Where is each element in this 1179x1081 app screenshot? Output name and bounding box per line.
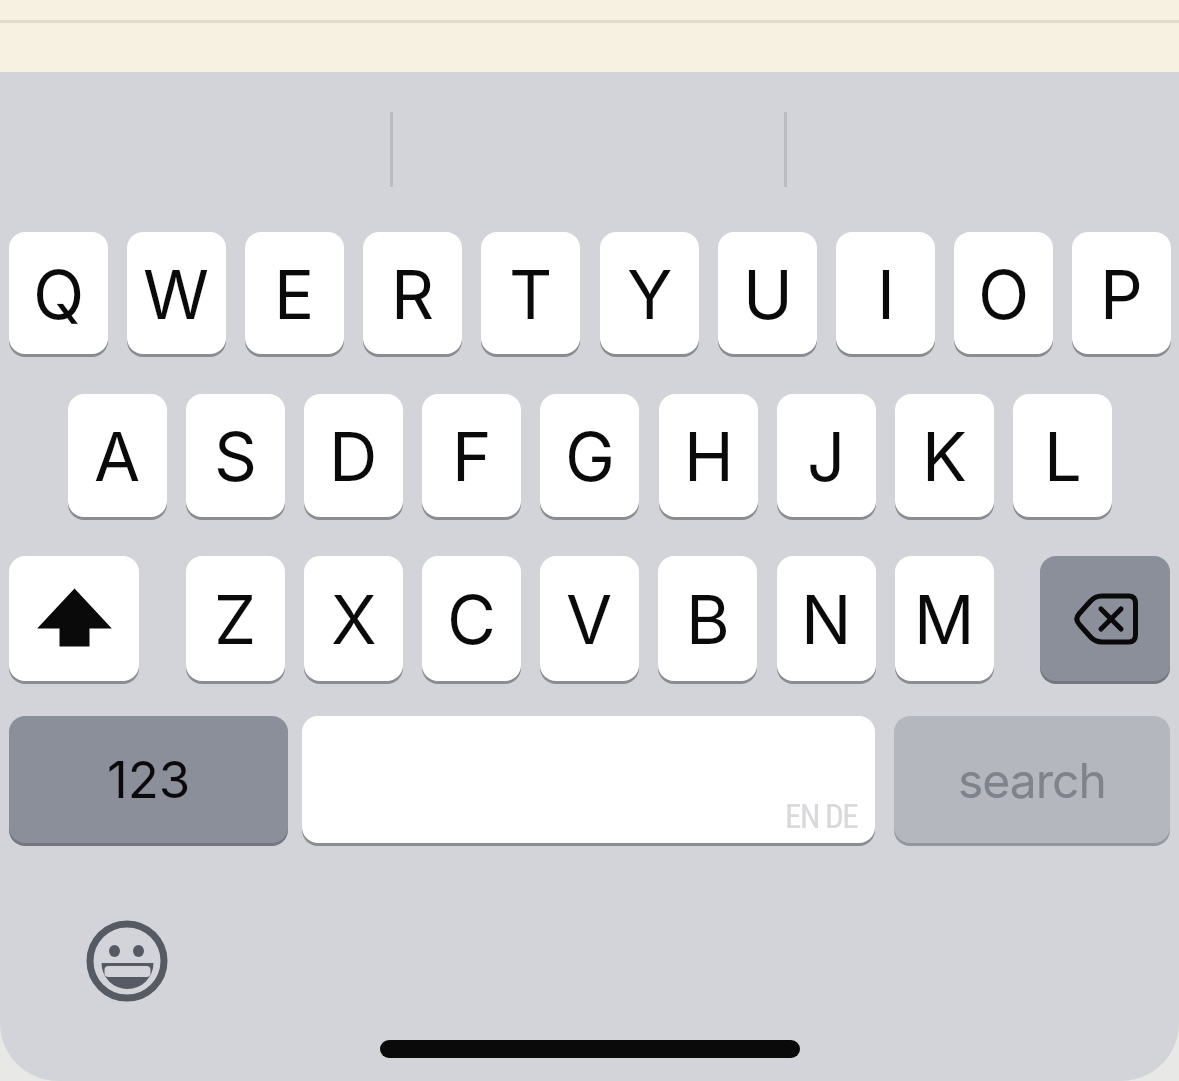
staticText: Y — [627, 254, 673, 335]
button[interactable]: R — [363, 232, 462, 354]
button[interactable]: C — [422, 556, 521, 681]
staticText: F — [452, 416, 492, 497]
staticText: P — [1100, 254, 1143, 335]
button[interactable]: L — [1013, 394, 1112, 517]
button[interactable]: J — [777, 394, 876, 517]
button[interactable]: P — [1072, 232, 1171, 354]
button[interactable]: N — [777, 556, 876, 681]
staticText: B — [686, 579, 730, 660]
button[interactable]: U — [718, 232, 817, 354]
button[interactable]: S — [186, 394, 285, 517]
button[interactable]: V — [540, 556, 639, 681]
button[interactable]: E — [245, 232, 344, 354]
button[interactable]: M — [895, 556, 994, 681]
staticText: L — [1044, 416, 1082, 497]
button[interactable]: B — [658, 556, 757, 681]
staticText: EN DE — [785, 797, 858, 836]
button[interactable]: 123 — [9, 716, 288, 843]
button[interactable]: O — [954, 232, 1053, 354]
button[interactable]: K — [895, 394, 994, 517]
button[interactable]: Q — [9, 232, 108, 354]
button[interactable]: A — [68, 394, 167, 517]
button[interactable]: search — [894, 716, 1170, 843]
button[interactable]: T — [481, 232, 580, 354]
staticText: A — [94, 416, 141, 497]
staticText: Q — [33, 254, 85, 335]
staticText: O — [978, 254, 1030, 335]
staticText: V — [566, 579, 613, 660]
staticText: H — [684, 416, 734, 497]
staticText: E — [274, 254, 315, 335]
button[interactable]: X — [304, 556, 403, 681]
staticText: C — [447, 579, 496, 660]
staticText: M — [914, 579, 975, 660]
button[interactable]: W — [127, 232, 226, 354]
button[interactable]: F — [422, 394, 521, 517]
button[interactable]: EN DE — [302, 716, 875, 843]
staticText: D — [329, 416, 378, 497]
button[interactable]: G — [540, 394, 639, 517]
staticText: T — [509, 254, 553, 335]
button[interactable]: H — [659, 394, 758, 517]
staticText: search — [958, 751, 1106, 809]
button[interactable] — [380, 1040, 800, 1058]
staticText: U — [743, 254, 793, 335]
button[interactable]: Z — [186, 556, 285, 681]
button[interactable]: Y — [600, 232, 699, 354]
staticText: Z — [214, 579, 257, 660]
button[interactable]: D — [304, 394, 403, 517]
staticText: J — [807, 416, 846, 497]
staticText: S — [214, 416, 257, 497]
staticText: G — [565, 416, 615, 497]
staticText: K — [922, 416, 968, 497]
staticText: W — [143, 254, 210, 335]
button[interactable] — [1040, 556, 1170, 681]
button[interactable] — [86, 920, 168, 1002]
staticText: N — [801, 579, 852, 660]
staticText: X — [331, 579, 377, 660]
button[interactable]: I — [836, 232, 935, 354]
staticText: 123 — [107, 749, 191, 811]
staticText: I — [877, 254, 895, 335]
staticText: R — [391, 254, 435, 335]
button[interactable] — [9, 556, 139, 681]
